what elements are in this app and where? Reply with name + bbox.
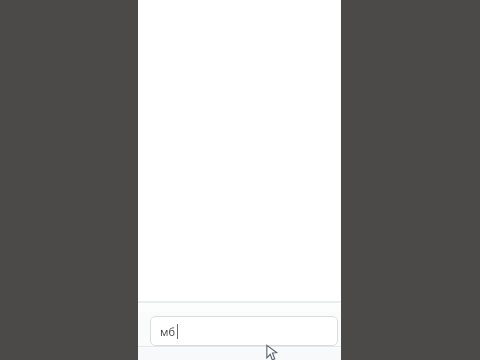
button[interactable]: Text input field bbox=[150, 316, 338, 346]
staticText: мб bbox=[160, 324, 176, 339]
